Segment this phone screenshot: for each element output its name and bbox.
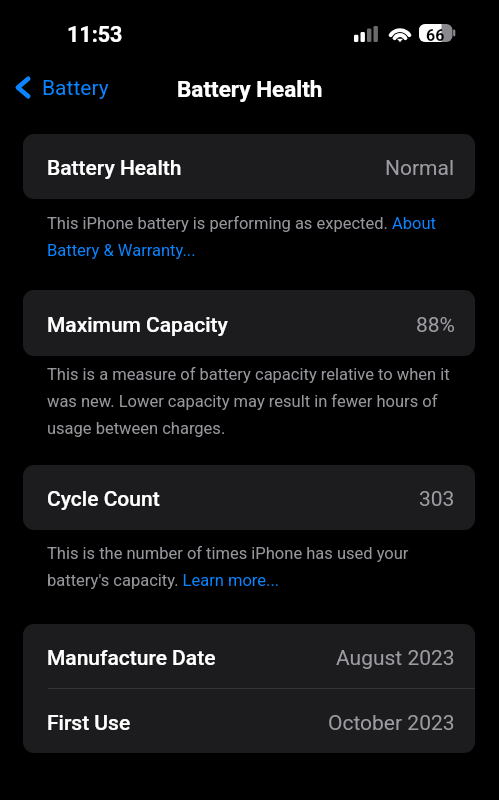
staticText: First Use <box>47 711 131 736</box>
button[interactable]: Cycle Count <box>23 465 475 530</box>
staticText: 88% <box>416 313 455 338</box>
staticText: Battery Health <box>177 76 323 102</box>
staticText: 11:53 <box>67 22 123 47</box>
staticText: This is the number of times iPhone has u… <box>47 544 457 590</box>
staticText: Battery <box>42 76 109 101</box>
staticText: August 2023 <box>336 646 455 671</box>
staticText: Maximum Capacity <box>47 313 228 338</box>
button[interactable]: Maximum Capacity <box>23 290 475 356</box>
button[interactable]: First Use <box>23 689 475 753</box>
button[interactable]: Manufacture Date <box>23 624 475 689</box>
staticText: This is a measure of battery capacity re… <box>47 365 457 438</box>
button[interactable]: Back to Battery <box>0 71 119 108</box>
staticText: 303 <box>419 487 455 512</box>
staticText: Manufacture Date <box>47 646 216 671</box>
staticText: Battery Health <box>47 156 182 181</box>
staticText: 66 <box>426 26 445 44</box>
button[interactable]: Battery Health <box>23 134 475 199</box>
staticText: Cycle Count <box>47 487 160 512</box>
staticText: October 2023 <box>328 711 455 736</box>
staticText: Normal <box>385 156 455 181</box>
staticText: This iPhone battery is performing as exp… <box>47 214 457 260</box>
